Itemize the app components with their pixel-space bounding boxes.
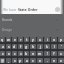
staticText: p: [19, 58, 22, 63]
button[interactable]: k: [44, 44, 50, 49]
staticText: b: [25, 51, 28, 56]
staticText: y: [32, 37, 34, 42]
button[interactable]: c: [30, 58, 36, 63]
button[interactable]: ,: [6, 58, 11, 63]
staticText: State Order: [18, 7, 38, 12]
button[interactable]: ?: [51, 51, 57, 56]
staticText: p: [60, 37, 63, 42]
staticText: j: [40, 44, 41, 49]
staticText: l: [54, 44, 55, 49]
staticText: e: [60, 58, 62, 63]
staticText: t: [26, 37, 28, 42]
button[interactable]: p: [18, 58, 23, 63]
staticText: !: [47, 51, 48, 56]
button[interactable]: n: [30, 51, 36, 56]
button[interactable]: @: [0, 58, 5, 63]
button[interactable]: e: [12, 37, 17, 42]
button[interactable]: v: [18, 51, 23, 56]
button[interactable]: p: [58, 37, 64, 42]
button[interactable]: c: [12, 51, 17, 56]
staticText: ,: [8, 58, 9, 63]
button[interactable]: Brands: [0, 15, 64, 25]
staticText: Brands: [2, 18, 13, 22]
staticText: s: [14, 58, 16, 63]
staticText: n: [32, 51, 35, 56]
staticText: w: [7, 37, 10, 42]
button[interactable]: d: [12, 44, 17, 49]
button[interactable]: Profile: [55, 7, 60, 12]
staticText: s: [8, 44, 10, 49]
staticText: d: [13, 44, 16, 49]
staticText: u: [39, 37, 42, 42]
staticText: ': [61, 44, 62, 49]
button[interactable]: g: [24, 44, 29, 49]
button[interactable]: l: [51, 44, 57, 49]
staticText: a: [2, 44, 4, 49]
staticText: g: [25, 44, 28, 49]
button[interactable]: w: [6, 37, 11, 42]
staticText: x: [60, 51, 62, 56]
staticText: x: [8, 51, 10, 56]
button[interactable]: !: [44, 51, 50, 56]
button[interactable]: y: [30, 37, 36, 42]
button[interactable]: ': [58, 44, 64, 49]
button[interactable]: z: [0, 51, 5, 56]
button[interactable]: n: [51, 58, 57, 63]
button[interactable]: e: [58, 58, 64, 63]
staticText: c: [14, 51, 16, 56]
button[interactable]: r: [18, 37, 23, 42]
staticText: h: [32, 44, 35, 49]
button[interactable]: s: [6, 44, 11, 49]
staticText: @: [1, 58, 5, 63]
staticText: We have: [3, 7, 17, 12]
staticText: v: [20, 51, 22, 56]
staticText: m: [38, 51, 42, 56]
staticText: i: [47, 37, 48, 42]
staticText: k: [46, 44, 48, 49]
staticText: q: [1, 37, 4, 42]
button[interactable]: o: [51, 37, 57, 42]
button[interactable]: a: [0, 44, 5, 49]
button[interactable]: x: [6, 51, 11, 56]
staticText: Design: [2, 28, 13, 32]
button[interactable]: h: [30, 44, 36, 49]
staticText: z: [2, 51, 4, 56]
button[interactable]: .: [44, 58, 50, 63]
button[interactable]: a: [24, 58, 29, 63]
staticText: ?: [53, 51, 55, 56]
button[interactable]: u: [37, 37, 43, 42]
button[interactable]: m: [37, 51, 43, 56]
button[interactable]: b: [24, 51, 29, 56]
button[interactable]: i: [44, 37, 50, 42]
button[interactable]: j: [37, 44, 43, 49]
button[interactable]: Design: [0, 25, 64, 35]
button[interactable]: t: [24, 37, 29, 42]
button[interactable]: s: [12, 58, 17, 63]
staticText: o: [53, 37, 56, 42]
button[interactable]: x: [58, 51, 64, 56]
button[interactable]: f: [18, 44, 23, 49]
staticText: n: [53, 58, 56, 63]
staticText: e: [14, 37, 16, 42]
staticText: a: [26, 58, 28, 63]
staticText: f: [20, 44, 22, 49]
staticText: e: [39, 58, 41, 63]
button[interactable]: q: [0, 37, 5, 42]
staticText: .: [47, 58, 48, 63]
button[interactable]: e: [37, 58, 43, 63]
staticText: c: [32, 58, 34, 63]
staticText: r: [20, 37, 22, 42]
